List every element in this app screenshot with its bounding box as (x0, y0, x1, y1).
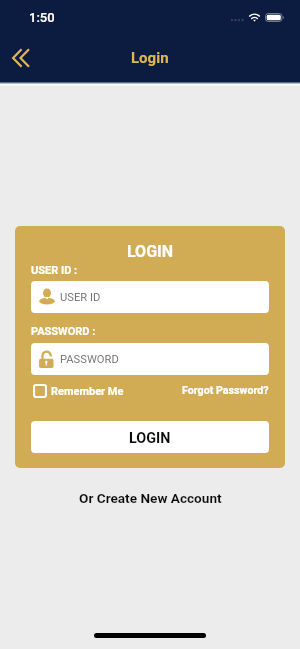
button[interactable]: Remember Me (31, 384, 124, 398)
staticText: Login (131, 49, 169, 67)
button[interactable]: Or Create New Account (0, 490, 300, 506)
button[interactable]: Back (3, 41, 37, 75)
staticText: PASSWORD (60, 353, 119, 366)
button[interactable]: USER ID (31, 281, 269, 313)
staticText: LOGIN (129, 430, 171, 447)
staticText: PASSWORD : (31, 325, 96, 338)
button[interactable]: Forgot Password? (182, 384, 269, 397)
staticText: USER ID (60, 291, 101, 304)
staticText: Or Create New Account (79, 490, 222, 506)
button[interactable]: PASSWORD (31, 343, 269, 375)
button[interactable]: LOGIN (31, 421, 269, 453)
staticText: 1:50 (29, 10, 55, 25)
staticText: Forgot Password? (182, 384, 269, 397)
staticText: Remember Me (51, 385, 124, 398)
staticText: LOGIN (15, 242, 285, 261)
staticText: USER ID : (31, 264, 78, 277)
